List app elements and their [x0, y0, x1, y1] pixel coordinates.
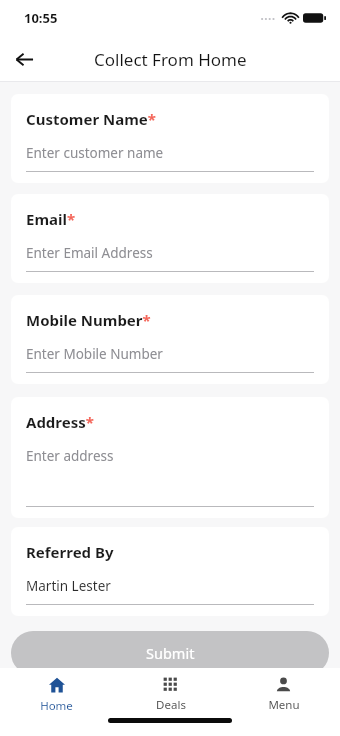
staticText: Enter Email Address — [26, 244, 153, 262]
button[interactable]: Customer Name* — [11, 94, 329, 183]
button[interactable]: Submit — [11, 631, 329, 675]
button[interactable]: Referred By — [11, 527, 329, 616]
staticText: Enter Mobile Number — [26, 345, 163, 363]
staticText: Home — [40, 698, 73, 714]
button[interactable]: Back — [8, 43, 40, 75]
button[interactable]: Mobile Number* — [11, 295, 329, 384]
staticText: Collect From Home — [94, 48, 247, 71]
button[interactable]: Address* — [11, 397, 329, 518]
staticText: Customer Name* — [26, 109, 156, 129]
staticText: Email* — [26, 209, 76, 229]
staticText: Referred By — [26, 542, 114, 562]
staticText: Mobile Number* — [26, 310, 151, 330]
staticText: 10:55 — [24, 9, 58, 27]
button[interactable]: Deals — [114, 668, 227, 713]
staticText: Enter customer name — [26, 144, 164, 162]
staticText: Martin Lester — [26, 577, 111, 595]
staticText: Menu — [268, 697, 300, 713]
staticText: Enter address — [26, 447, 114, 465]
button[interactable]: Menu — [227, 668, 340, 713]
button[interactable]: Home — [0, 668, 113, 714]
staticText: Deals — [156, 697, 186, 713]
staticText: Submit — [146, 643, 195, 663]
button[interactable]: Email* — [11, 194, 329, 283]
staticText: Address* — [26, 412, 94, 432]
